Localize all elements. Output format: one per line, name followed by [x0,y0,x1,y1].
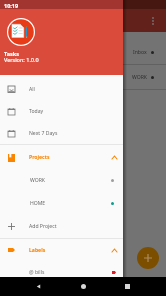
button[interactable]: Next 7 Days [0,122,123,144]
staticText: @ bills [29,269,45,276]
button[interactable]: WORK [0,169,123,192]
staticText: Version: 1.0.0 [4,56,39,63]
button[interactable]: HOME [0,192,123,215]
button[interactable]: Add task [137,247,159,269]
staticText: Projects [29,154,50,161]
button[interactable]: More options [147,15,159,27]
button[interactable]: Back [33,281,44,292]
button[interactable]: @ bills [0,261,123,283]
staticText: Today [29,108,44,115]
button[interactable]: WORK [0,65,166,89]
staticText: 10:19 [4,2,19,9]
button[interactable]: Inbox [0,40,166,64]
staticText: Inbox [133,49,147,56]
staticText: WORK [30,177,45,184]
staticText: WORK [132,74,147,81]
staticText: Next 7 Days [29,130,58,137]
button[interactable]: All [0,78,123,100]
button[interactable]: Today [0,100,123,122]
staticText: HOME [30,200,46,207]
button[interactable]: Home [78,281,89,292]
staticText: All [29,86,35,93]
staticText: Labels [29,247,46,254]
staticText: Tasks [4,50,19,57]
button[interactable]: Recents [122,281,133,292]
button[interactable]: Labels [0,239,123,261]
button[interactable]: Projects [0,146,123,169]
button[interactable]: Add Project [0,215,123,238]
staticText: Add Project [29,223,57,230]
